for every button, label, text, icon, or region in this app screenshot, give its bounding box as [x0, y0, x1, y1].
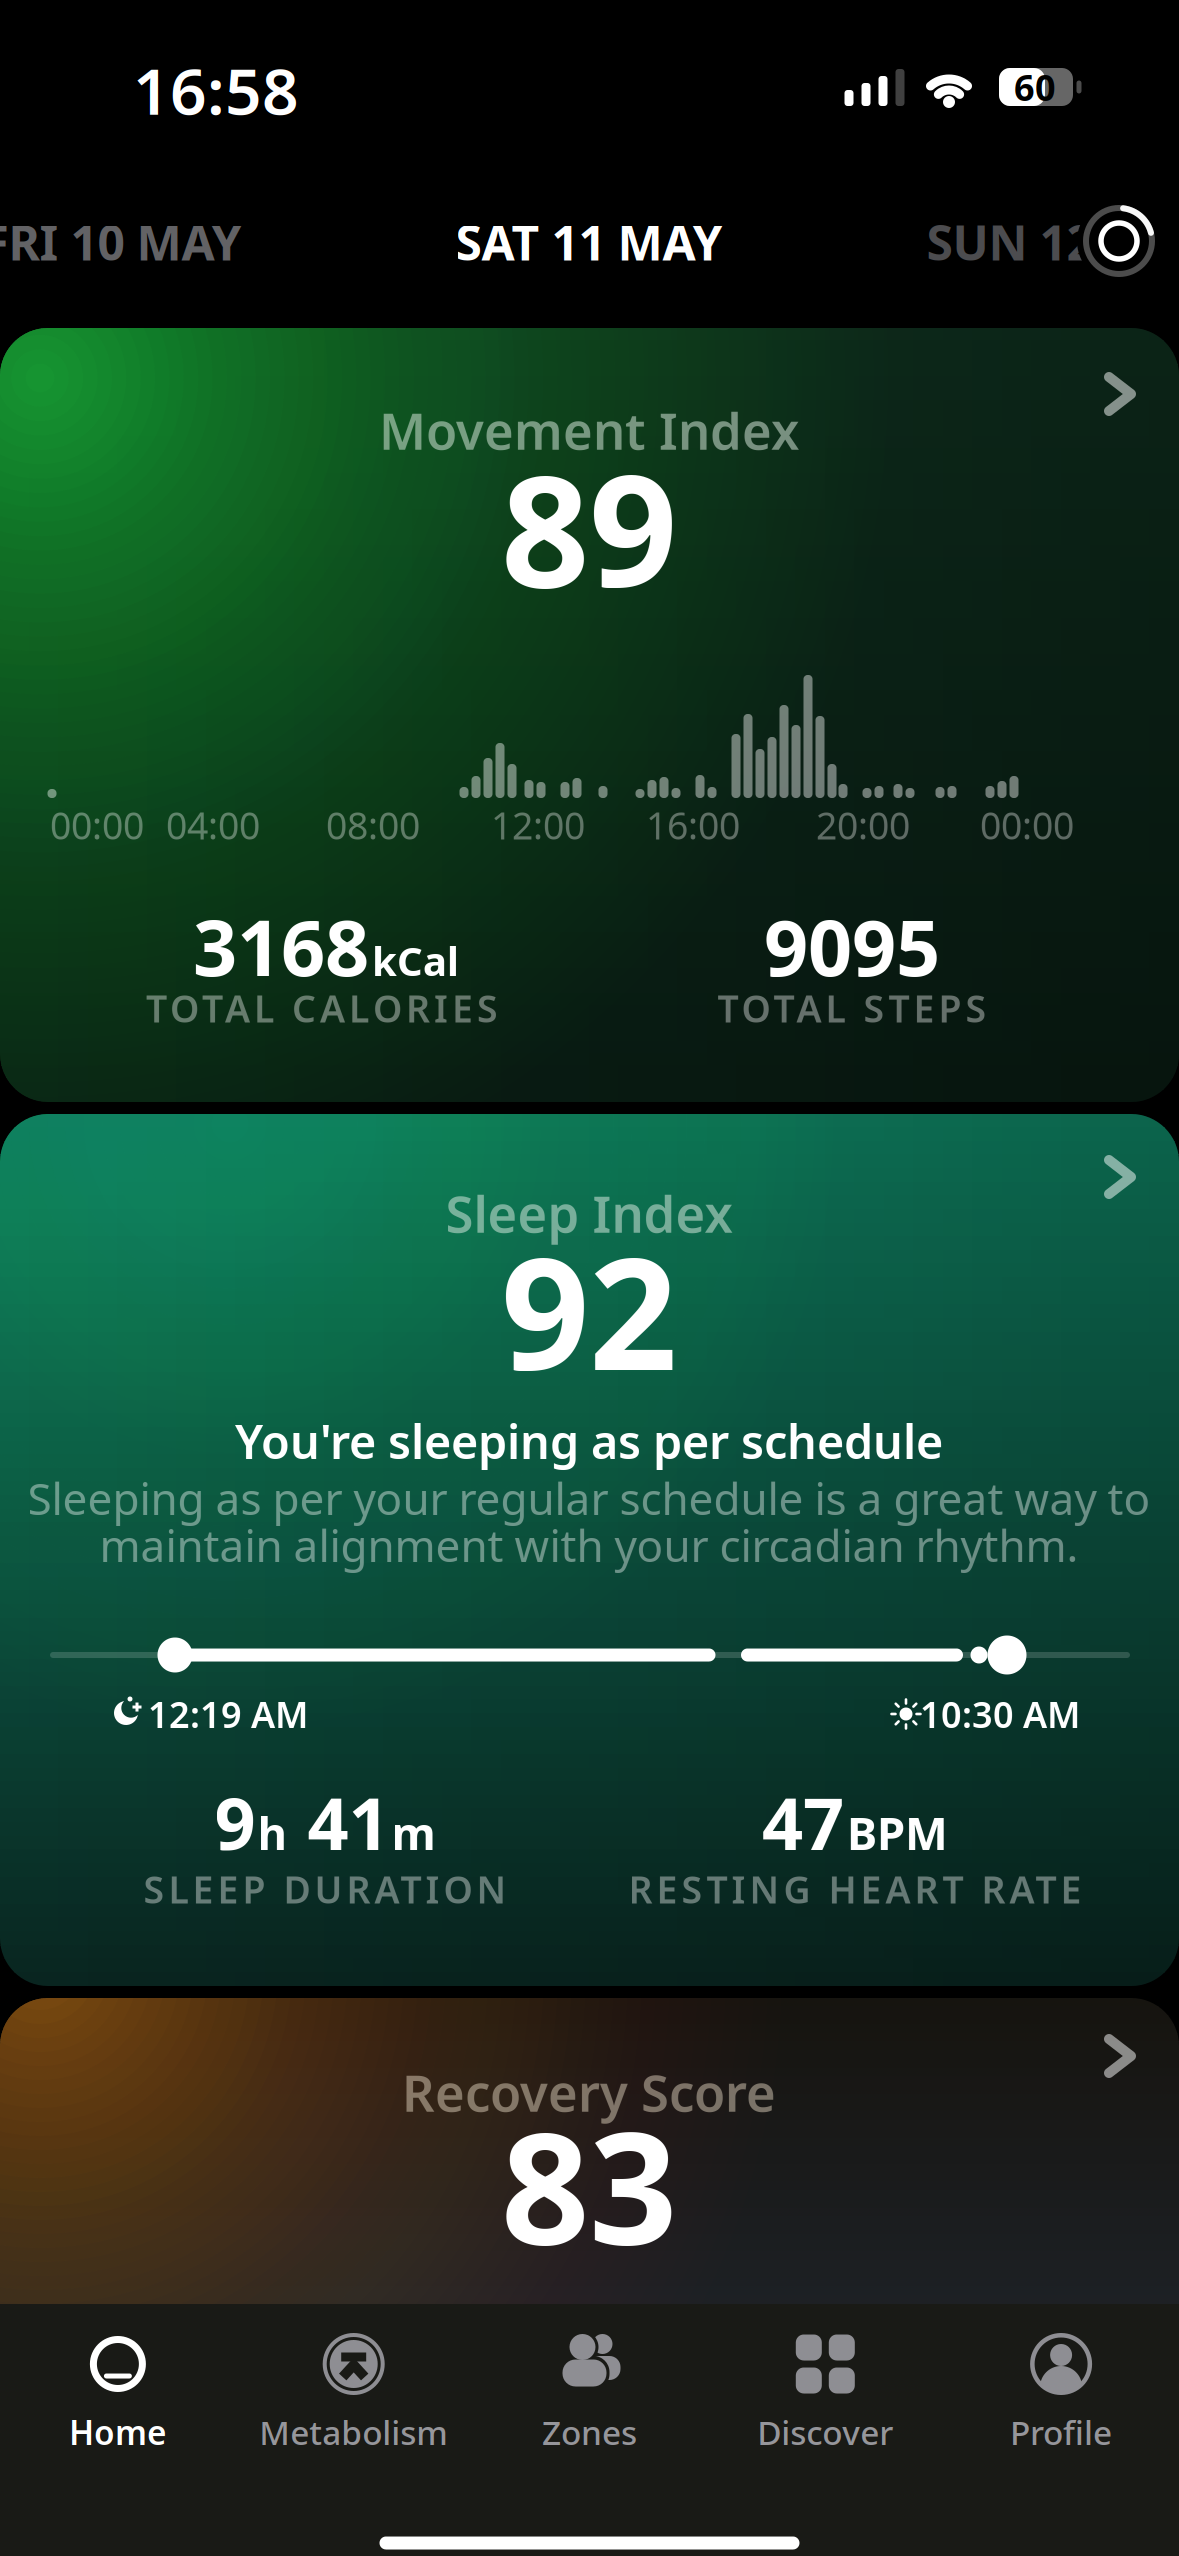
staticText: Recovery Score [402, 2058, 776, 2126]
button[interactable]: Sleep Index [0, 1114, 1179, 1986]
staticText: 20:00 [816, 800, 910, 850]
staticText: Zones [542, 2410, 637, 2454]
staticText: You're sleeping as per schedule [235, 1410, 943, 1472]
staticText: 08:00 [326, 800, 420, 850]
staticText: Movement Index [379, 396, 799, 464]
button[interactable]: SAT 11 MAY [455, 210, 722, 274]
staticText: TOTAL STEPS [717, 983, 986, 1033]
staticText: 83 [501, 2081, 677, 2287]
staticText: Sleep Index [445, 1179, 732, 1247]
button[interactable]: SUN 12 [926, 210, 1093, 274]
button[interactable]: Movement Index [0, 328, 1179, 1102]
staticText: 12:19 AM [148, 1690, 308, 1738]
staticText: 00:00 [980, 800, 1074, 850]
staticText: 3168 [193, 895, 369, 997]
staticText: 04:00 [166, 800, 260, 850]
staticText: RESTING HEART RATE [628, 1864, 1081, 1914]
button[interactable]: Ring status [1077, 199, 1161, 283]
staticText: h [257, 1802, 286, 1862]
staticText: FRI 10 MAY [0, 210, 241, 274]
button[interactable]: Profile [943, 2304, 1179, 2494]
staticText: 9 [214, 1774, 255, 1870]
staticText: BPM [847, 1802, 948, 1862]
staticText: SUN 12 [926, 210, 1093, 274]
staticText: 12:00 [491, 800, 585, 850]
staticText: maintain alignment with your circadian r… [99, 1516, 1078, 1574]
staticText: TOTAL CALORIES [146, 983, 498, 1033]
button[interactable]: Discover [707, 2304, 943, 2494]
staticText: 47 [762, 1774, 844, 1870]
staticText: 92 [501, 1207, 677, 1413]
staticText: 16:58 [133, 47, 299, 132]
button[interactable]: FRI 10 MAY [0, 210, 241, 274]
button[interactable]: Zones [472, 2304, 707, 2494]
staticText: Profile [1010, 2410, 1112, 2454]
staticText: 60 [1014, 63, 1056, 111]
staticText: 16:00 [646, 800, 740, 850]
staticText: 00:00 [50, 800, 144, 850]
staticText: 89 [501, 424, 677, 630]
button[interactable]: Recovery Score [0, 1998, 1179, 2556]
staticText: Sleeping as per your regular schedule is… [27, 1469, 1150, 1527]
staticText: 41 [288, 1774, 389, 1870]
staticText: SAT 11 MAY [455, 210, 722, 274]
staticText: kCal [372, 934, 459, 987]
staticText: Home [69, 2410, 167, 2454]
staticText: m [391, 1802, 435, 1862]
staticText: SLEEP DURATION [143, 1864, 506, 1914]
staticText: 10:30 AM [920, 1690, 1080, 1738]
staticText: 9095 [764, 895, 940, 997]
button[interactable]: Home [0, 2304, 236, 2494]
staticText: Metabolism [259, 2410, 448, 2454]
button[interactable]: Metabolism [236, 2304, 472, 2494]
staticText: Discover [757, 2410, 893, 2454]
